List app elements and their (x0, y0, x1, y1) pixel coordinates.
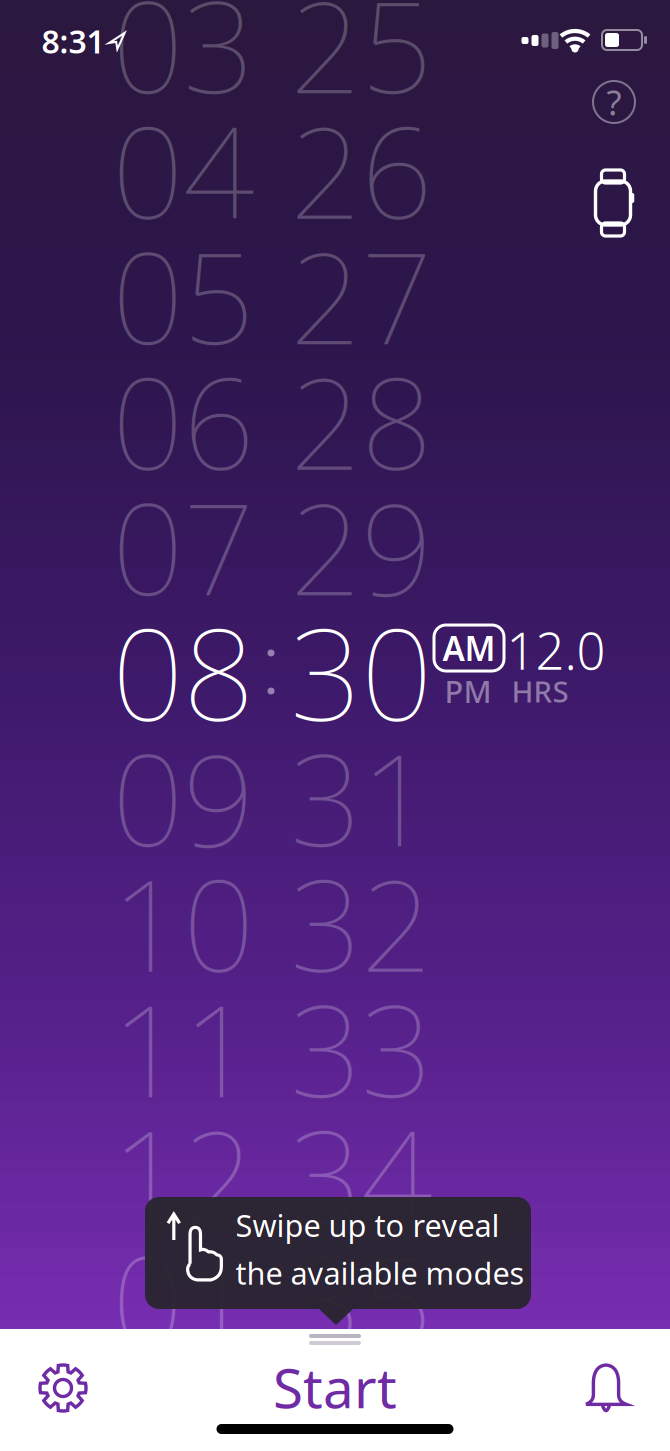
staticText: AM (442, 626, 495, 670)
staticText: Swipe up to reveal (235, 1205, 499, 1245)
staticText: 30 (290, 589, 432, 755)
staticText: 01 (112, 1216, 254, 1383)
button[interactable]: Alarm sounds (585, 1365, 627, 1413)
staticText: Start (273, 1351, 397, 1423)
staticText: 03 (112, 0, 254, 128)
staticText: 32 (290, 840, 432, 1006)
button[interactable]: Help (593, 81, 635, 123)
staticText: 07 (112, 463, 254, 630)
staticText: 28 (290, 338, 432, 504)
staticText: HRS (511, 671, 568, 710)
button[interactable]: Apple Watch (591, 168, 635, 238)
staticText: the available modes (235, 1252, 524, 1293)
staticText: 06 (112, 338, 254, 504)
staticText: ? (606, 79, 621, 125)
staticText: 33 (290, 965, 432, 1132)
staticText: 12.0 (506, 616, 605, 684)
staticText: 09 (112, 714, 254, 881)
staticText: 26 (290, 87, 432, 253)
staticText: 25 (290, 0, 432, 128)
staticText: 12 (112, 1091, 254, 1257)
staticText: 31 (290, 714, 432, 881)
staticText: PM (444, 671, 491, 711)
staticText: 34 (290, 1091, 432, 1257)
button[interactable]: AM (434, 625, 504, 671)
staticText: 04 (112, 87, 254, 253)
staticText: 08 (112, 589, 254, 755)
staticText: 11 (112, 965, 254, 1132)
staticText: 8:31 (41, 20, 104, 62)
button[interactable]: Start (273, 1351, 397, 1423)
button[interactable]: Settings (39, 1364, 87, 1412)
staticText: 27 (290, 212, 432, 379)
staticText: 29 (290, 463, 432, 630)
staticText: 05 (112, 212, 254, 379)
button[interactable]: PM (444, 671, 491, 711)
staticText: 35 (290, 1216, 432, 1383)
staticText: 10 (112, 840, 254, 1006)
